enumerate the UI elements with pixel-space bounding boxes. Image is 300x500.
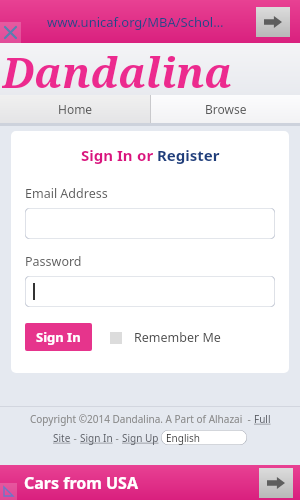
button[interactable]: Remember Me [110,329,221,346]
button[interactable]: Ad info [0,483,17,500]
button[interactable]: Full [254,412,271,426]
button[interactable]: Register [157,145,220,165]
button[interactable]: Cars from USA [0,465,300,500]
button[interactable]: Open advertisement [259,468,293,498]
button[interactable]: Home [0,95,150,123]
staticText: Copyright ©2014 Dandalina. A Part of Alh… [30,412,254,426]
staticText: Dandalina [2,43,233,95]
staticText: Home [58,101,93,117]
button[interactable]: Site [53,431,71,445]
staticText: Password [25,253,82,270]
staticText: or [137,145,157,165]
staticText: Email Address [25,185,108,202]
button[interactable]: Sign Up [122,431,159,445]
button[interactable] [25,208,275,239]
button[interactable]: Sign In [80,431,113,445]
button[interactable]: Sign In [25,323,92,351]
button[interactable]: Open advertisement [256,7,290,37]
button[interactable]: Browse [151,95,300,123]
button[interactable]: Language English [161,430,247,445]
button[interactable]: Sign In [81,145,137,165]
staticText: Cars from USA [24,472,138,494]
staticText: www.unicaf.org/MBA/Schol… [47,13,224,31]
staticText: Sign In [36,328,81,346]
button[interactable]: Close ad [0,22,21,43]
staticText: Remember Me [134,329,221,346]
staticText: Browse [205,101,247,117]
button[interactable]: www.unicaf.org/MBA/Schol… [0,0,300,43]
staticText: - [113,431,122,445]
staticText: English [166,431,201,445]
staticText: - [71,431,80,445]
button[interactable] [25,276,275,307]
